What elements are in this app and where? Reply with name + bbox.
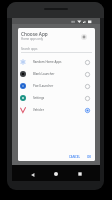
staticText: Pixel Launcher <box>33 84 54 88</box>
button[interactable]: Random Home Apps <box>18 56 95 68</box>
staticText: Blank Launcher <box>33 72 55 76</box>
staticText: Random Home Apps <box>33 60 62 64</box>
button[interactable]: CANCEL <box>67 153 82 161</box>
button[interactable]: Settings <box>18 92 95 104</box>
button[interactable]: App info <box>81 34 87 40</box>
staticText: Choose App <box>21 31 48 37</box>
button[interactable]: Back <box>29 171 37 179</box>
staticText: Search apps <box>21 47 38 51</box>
staticText: CANCEL <box>69 155 80 159</box>
button[interactable]: Recent apps <box>76 170 84 178</box>
staticText: Settings <box>33 96 45 100</box>
staticText: Vehicler <box>33 108 44 112</box>
button[interactable]: Blank Launcher <box>18 68 95 80</box>
staticText: OK <box>87 155 92 159</box>
staticText: Home apps only <box>21 37 44 41</box>
button[interactable]: Vehicler <box>18 104 95 116</box>
button[interactable]: Pixel Launcher <box>18 80 95 92</box>
button[interactable]: OK <box>85 153 94 161</box>
button[interactable]: Home <box>52 170 60 178</box>
